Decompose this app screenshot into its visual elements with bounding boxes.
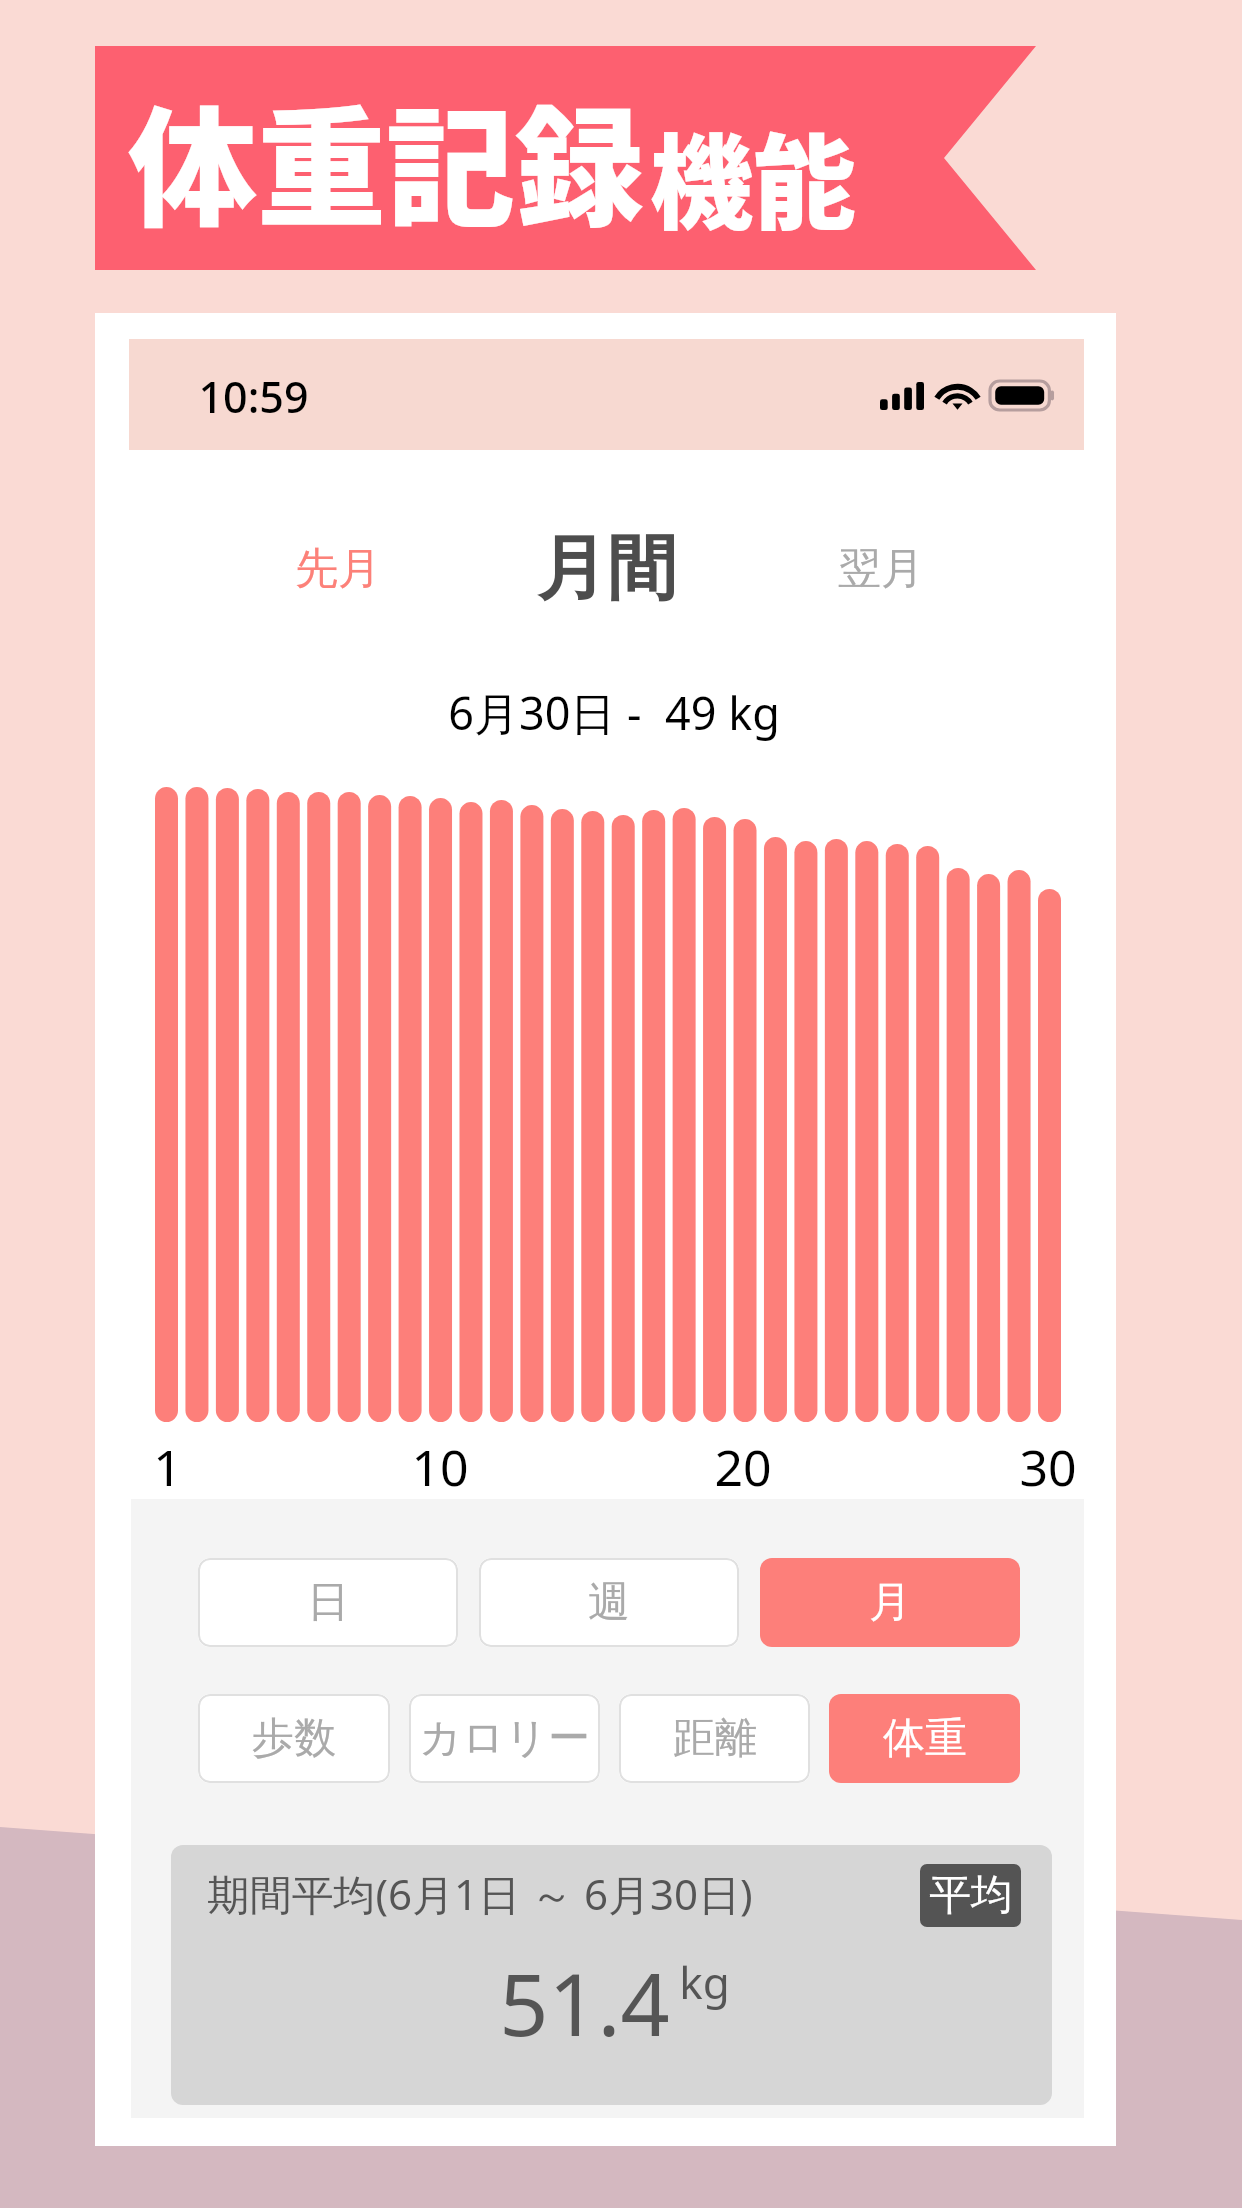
staticText: 51.4 xyxy=(499,1944,670,2061)
staticText: 週 xyxy=(588,1576,630,1629)
button[interactable]: 距離 xyxy=(619,1694,810,1783)
staticText: 距離 xyxy=(673,1712,757,1765)
staticText: 20 xyxy=(714,1433,772,1501)
button[interactable]: 翌月 xyxy=(776,509,986,629)
button[interactable]: 月間 xyxy=(507,509,707,629)
staticText: 歩数 xyxy=(252,1712,336,1765)
button[interactable]: 週 xyxy=(479,1558,739,1647)
other: Battery xyxy=(990,381,1056,410)
staticText: 先月 xyxy=(295,542,381,596)
staticText: 月 xyxy=(869,1576,911,1629)
staticText: kg xyxy=(679,1952,730,2012)
staticText: カロリー xyxy=(419,1712,590,1765)
staticText: 翌月 xyxy=(838,542,924,596)
staticText: 1 xyxy=(153,1433,182,1501)
button[interactable]: 期間平均(6月1日 ～ 6月30日) xyxy=(171,1845,1052,2105)
button[interactable]: 先月 xyxy=(233,509,443,629)
staticText: 10:59 xyxy=(198,367,309,426)
staticText: 10 xyxy=(411,1433,469,1501)
button[interactable]: カロリー xyxy=(409,1694,600,1783)
staticText: 6月30日 - 49 kg xyxy=(448,682,780,743)
button[interactable]: 月 xyxy=(760,1558,1020,1647)
staticText: 平均 xyxy=(929,1869,1013,1922)
other: Cellular signal xyxy=(880,382,924,410)
staticText: 期間平均(6月1日 ～ 6月30日) xyxy=(207,1865,753,1922)
staticText: 日 xyxy=(307,1576,349,1629)
staticText: 30 xyxy=(1019,1433,1077,1501)
other: Wi-Fi xyxy=(937,381,978,410)
staticText: 体重 xyxy=(883,1712,967,1765)
button[interactable]: 平均 xyxy=(920,1864,1021,1927)
button[interactable]: 日 xyxy=(198,1558,458,1647)
button[interactable]: 歩数 xyxy=(198,1694,390,1783)
button[interactable]: 体重 xyxy=(829,1694,1020,1783)
staticText: 月間 xyxy=(537,525,677,613)
staticText: 機能 xyxy=(650,102,856,251)
staticText: 体重記録 xyxy=(128,66,644,253)
